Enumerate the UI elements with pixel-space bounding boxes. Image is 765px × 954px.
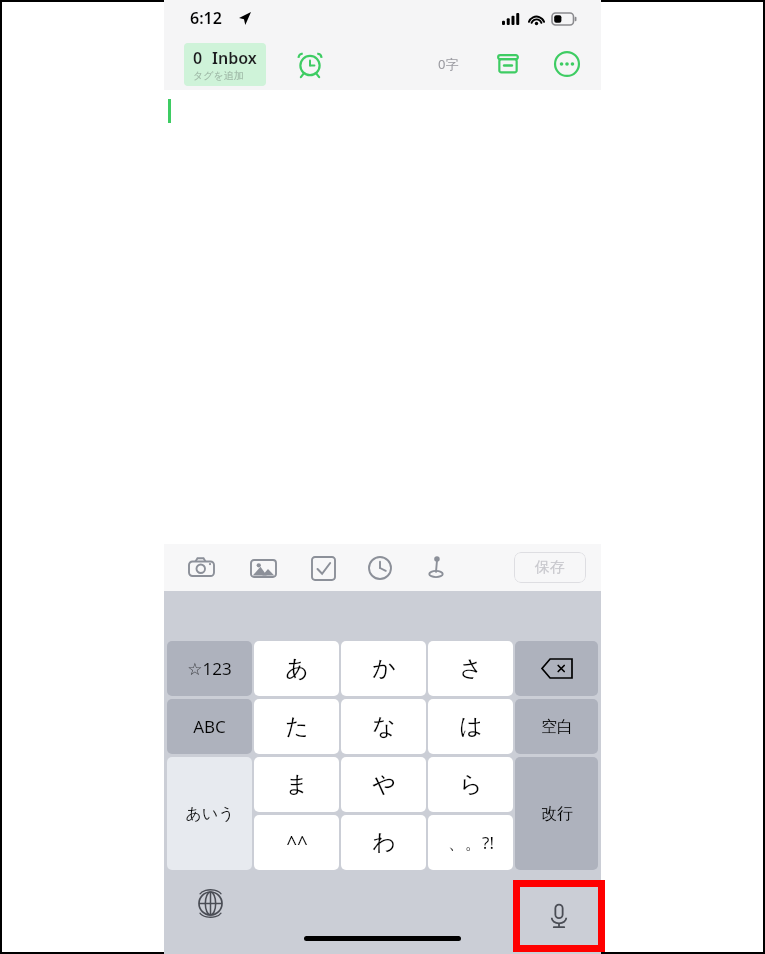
button[interactable]: ま <box>254 757 339 812</box>
button[interactable]: Camera <box>181 548 221 588</box>
button[interactable]: わ <box>341 815 426 870</box>
button[interactable]: 保存 <box>514 552 586 583</box>
staticText: さ <box>459 654 483 683</box>
button[interactable]: Time <box>360 548 400 588</box>
button[interactable]: Checklist <box>303 548 343 588</box>
button[interactable]: あ <box>254 641 339 696</box>
staticText: Inbox <box>212 47 257 69</box>
staticText: 保存 <box>535 558 565 577</box>
staticText: な <box>372 712 396 741</box>
staticText: タグを追加 <box>193 69 244 82</box>
button[interactable]: Location <box>416 548 456 588</box>
button[interactable]: Delete <box>515 641 598 696</box>
button[interactable]: た <box>254 699 339 754</box>
button[interactable]: ABC <box>167 699 252 754</box>
button[interactable]: 0 <box>184 43 266 86</box>
button[interactable]: 空白 <box>515 699 598 754</box>
staticText: た <box>285 712 309 741</box>
staticText: ら <box>459 770 483 799</box>
staticText: 改行 <box>541 804 573 824</box>
staticText: ^^ <box>286 830 308 856</box>
staticText: か <box>372 654 396 683</box>
button[interactable]: Dictation <box>513 880 605 952</box>
staticText: や <box>372 770 396 799</box>
staticText: ま <box>285 770 309 799</box>
button[interactable]: か <box>341 641 426 696</box>
button[interactable]: Archive <box>489 45 527 83</box>
button[interactable]: あいう <box>167 757 252 870</box>
staticText: あいう <box>185 804 235 824</box>
staticText: ABC <box>193 715 226 738</box>
button[interactable]: や <box>341 757 426 812</box>
button[interactable]: は <box>428 699 513 754</box>
staticText: あ <box>285 654 309 683</box>
staticText: ☆123 <box>187 657 232 680</box>
button[interactable]: 改行 <box>515 757 598 870</box>
button[interactable]: ら <box>428 757 513 812</box>
staticText: わ <box>372 828 396 857</box>
button[interactable]: Photo <box>243 548 283 588</box>
button[interactable]: さ <box>428 641 513 696</box>
button[interactable]: Reminder <box>291 45 329 83</box>
staticText: 0字 <box>438 55 459 73</box>
button[interactable]: 、。?! <box>428 815 513 870</box>
staticText: 0 <box>193 47 203 69</box>
button[interactable]: More options <box>548 45 586 83</box>
staticText: は <box>459 712 483 741</box>
button[interactable]: ☆123 <box>167 641 252 696</box>
staticText: 、。?! <box>448 831 494 854</box>
button[interactable]: な <box>341 699 426 754</box>
staticText: 6:12 <box>190 7 222 29</box>
staticText: 空白 <box>541 717 573 737</box>
button[interactable]: Switch keyboard <box>190 883 230 923</box>
button[interactable]: ^^ <box>254 815 339 870</box>
